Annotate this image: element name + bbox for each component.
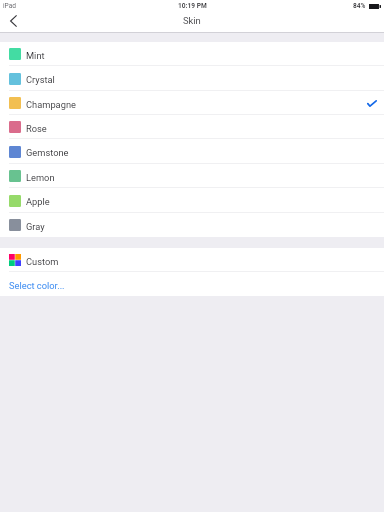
staticText: Lemon	[26, 172, 55, 183]
staticText: Rose	[26, 123, 47, 134]
staticText: iPad	[3, 2, 17, 10]
staticText: 84%	[353, 2, 366, 10]
button[interactable]: Mint	[0, 42, 384, 66]
button[interactable]: Crystal	[0, 66, 384, 91]
staticText: Custom	[26, 256, 59, 267]
button[interactable]: Champagne	[0, 91, 384, 115]
staticText: Crystal	[26, 74, 55, 85]
button[interactable]: Select color...	[0, 272, 384, 296]
button[interactable]: Apple	[0, 188, 384, 213]
button[interactable]: Rose	[0, 115, 384, 139]
button[interactable]: Gemstone	[0, 139, 384, 164]
staticText: Champagne	[26, 99, 76, 110]
staticText: Gray	[26, 221, 45, 232]
staticText: Mint	[26, 50, 45, 61]
staticText: Apple	[26, 196, 50, 207]
button[interactable]: Gray	[0, 213, 384, 237]
button[interactable]: Lemon	[0, 164, 384, 188]
staticText: Select color...	[9, 280, 65, 291]
staticText: 10:19 PM	[178, 2, 207, 10]
button[interactable]: Custom	[0, 248, 384, 272]
button[interactable]: Back	[0, 12, 26, 32]
staticText: Gemstone	[26, 147, 69, 158]
staticText: Skin	[183, 15, 201, 26]
